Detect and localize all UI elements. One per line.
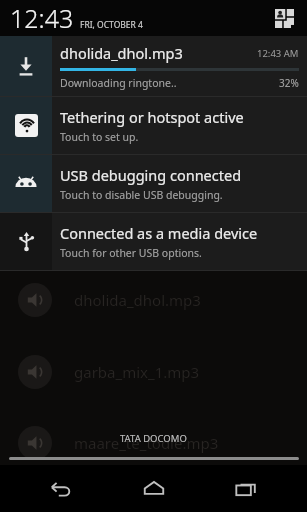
button[interactable]: Close notification shade [9, 457, 299, 460]
staticText: 32% [279, 76, 299, 90]
staticText: 12:43 [10, 1, 74, 35]
staticText: Touch to disable USB debugging. [60, 188, 223, 202]
staticText: Connected as a media device [60, 223, 258, 243]
button[interactable]: Connected as a media device [0, 213, 307, 270]
staticText: Tethering or hotspot active [60, 107, 244, 127]
button[interactable]: Quick settings [269, 3, 299, 33]
button[interactable]: Back [30, 465, 92, 512]
button[interactable]: USB debugging connected [0, 155, 307, 212]
staticText: TATA DOCOMO [120, 432, 187, 445]
staticText: garba_mix_1.mp3 [74, 362, 200, 382]
button[interactable]: Tethering or hotspot active [0, 97, 307, 154]
staticText: dholida_dhol.mp3 [74, 290, 201, 310]
staticText: 12:43 AM [257, 47, 299, 60]
staticText: FRI, OCTOBER 4 [80, 19, 143, 31]
staticText: dholida_dhol.mp3 [60, 43, 257, 63]
staticText: Touch for other USB options. [60, 246, 202, 260]
button[interactable]: Recent apps [215, 465, 277, 512]
staticText: Touch to set up. [60, 130, 139, 144]
staticText: maare_te_todle.mp3 [74, 433, 219, 453]
button[interactable]: dholida_dhol.mp3 [0, 36, 307, 96]
button[interactable]: Home [123, 465, 185, 512]
staticText: USB debugging connected [60, 165, 242, 185]
staticText: Downloading ringtone.. [60, 76, 279, 90]
